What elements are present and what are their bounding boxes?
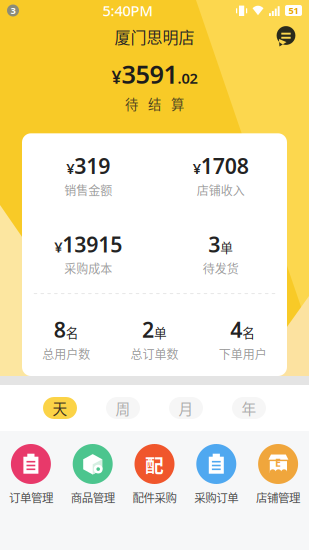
staticText: 总用户数 (42, 345, 90, 362)
button[interactable]: 天 (43, 397, 77, 419)
staticText: 2 (142, 315, 154, 344)
staticText: 销售金额 (64, 181, 112, 199)
staticText: 待发货 (203, 260, 239, 277)
staticText: 订单管理 (9, 489, 53, 506)
button[interactable]: 年 (232, 397, 266, 419)
button[interactable]: Messages (275, 25, 309, 47)
button[interactable]: 采购订单 (185, 444, 247, 506)
staticText: 4 (230, 315, 242, 344)
staticText: 店铺管理 (256, 489, 300, 506)
staticText: 13915 (62, 230, 122, 258)
staticText: 年 (241, 397, 256, 419)
staticText: 采购订单 (194, 489, 238, 506)
staticText: ¥ (54, 237, 62, 256)
staticText: .02 (177, 68, 197, 88)
staticText: 1708 (201, 152, 249, 180)
staticText: 单 (154, 323, 167, 341)
staticText: 周 (115, 397, 130, 419)
staticText: 结 (148, 94, 161, 113)
staticText: 天 (52, 397, 67, 419)
button[interactable]: 月 (169, 397, 203, 419)
staticText: 待 (125, 94, 138, 113)
staticText: 配件采购 (132, 489, 176, 506)
staticText: 319 (74, 152, 110, 180)
staticText: 3 (208, 230, 220, 258)
button[interactable]: 订单管理 (0, 444, 62, 506)
staticText: 单 (220, 238, 233, 256)
staticText: 51 (288, 4, 298, 17)
staticText: 配 (145, 450, 164, 477)
staticText: ¥ (193, 159, 201, 178)
staticText: 3591 (121, 57, 177, 91)
button[interactable]: 配 (124, 444, 185, 506)
button[interactable]: 周 (106, 397, 140, 419)
staticText: 算 (171, 94, 184, 113)
staticText: 下单用户 (219, 345, 267, 362)
staticText: 5:40PM (102, 1, 152, 20)
staticText: 采购成本 (64, 260, 112, 277)
button[interactable]: E (247, 444, 309, 506)
staticText: 月 (178, 397, 193, 419)
staticText: 3 (10, 4, 15, 17)
staticText: E (275, 455, 281, 470)
staticText: 厦门思明店 (114, 25, 194, 48)
staticText: ¥ (66, 159, 74, 178)
staticText: ¥ (111, 66, 121, 89)
staticText: 8 (54, 315, 66, 344)
staticText: 名 (66, 323, 79, 341)
staticText: 店铺收入 (197, 181, 245, 199)
staticText: 名 (242, 323, 255, 341)
staticText: 商品管理 (71, 489, 115, 506)
button[interactable]: 商品管理 (62, 444, 124, 506)
staticText: 总订单数 (130, 345, 178, 362)
